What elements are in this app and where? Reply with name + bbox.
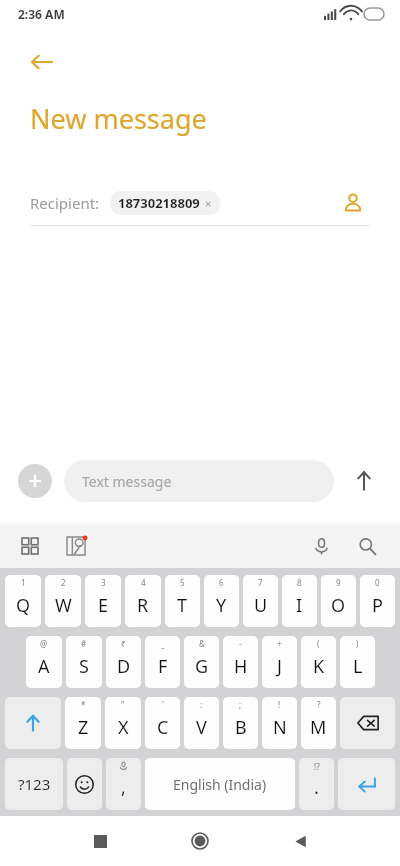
button[interactable]: ; [223, 697, 258, 749]
staticText: 6 [219, 577, 224, 588]
button[interactable]: _ [145, 636, 180, 688]
staticText: : [200, 699, 203, 710]
button[interactable]: !? [299, 758, 334, 810]
button[interactable]: & [184, 636, 219, 688]
staticText: E [98, 593, 109, 618]
staticText: _ [161, 638, 165, 649]
button[interactable]: Search [350, 529, 384, 563]
button[interactable]: * [65, 697, 101, 749]
staticText: 9 [336, 577, 341, 588]
staticText: Y [216, 593, 227, 618]
button[interactable]: Home [178, 819, 222, 863]
staticText: O [331, 593, 346, 618]
button[interactable]: 0 [360, 575, 395, 627]
staticText: L [353, 654, 363, 679]
staticText: B [235, 715, 247, 740]
button[interactable]: Choose contact [336, 186, 370, 220]
button[interactable]: Text message [64, 460, 334, 502]
button[interactable]: Back [278, 819, 322, 863]
staticText: ?123 [18, 774, 51, 794]
staticText: W [55, 593, 72, 618]
staticText: " [121, 699, 125, 710]
staticText: . [314, 775, 319, 800]
staticText: K [313, 654, 325, 679]
staticText: ! [278, 699, 281, 710]
staticText: V [196, 715, 207, 740]
staticText: 8 [297, 577, 302, 588]
staticText: F [158, 654, 168, 679]
button[interactable]: # [66, 636, 102, 688]
button[interactable]: 8 [282, 575, 317, 627]
button[interactable]: Recents [78, 819, 122, 863]
staticText: H [234, 654, 248, 679]
staticText: Text message [82, 472, 172, 491]
staticText: 7 [258, 577, 263, 588]
button[interactable]: 18730218809 [110, 191, 220, 215]
staticText: ' [162, 699, 164, 710]
button[interactable]: ' [145, 697, 180, 749]
button[interactable]: ₹ [106, 636, 141, 688]
staticText: - [239, 638, 242, 649]
staticText: !? [314, 761, 320, 772]
staticText: English (India) [173, 775, 267, 794]
staticText: & [199, 638, 205, 649]
staticText: × [205, 196, 212, 211]
staticText: D [117, 654, 131, 679]
button[interactable]: Send [346, 463, 382, 499]
button[interactable]: Backspace [340, 697, 395, 749]
button[interactable]: 2 [45, 575, 81, 627]
staticText: Recipient: [30, 193, 100, 213]
staticText: Z [78, 715, 89, 740]
staticText: ) [356, 638, 359, 649]
button[interactable]: Add attachment [18, 464, 52, 498]
staticText: , [121, 775, 126, 800]
button[interactable]: 4 [125, 575, 161, 627]
staticText: 5 [180, 577, 185, 588]
button[interactable]: Shift [5, 697, 61, 749]
button[interactable]: - [223, 636, 258, 688]
staticText: # [81, 638, 87, 649]
staticText: T [177, 593, 188, 618]
button[interactable]: Enter [338, 758, 395, 810]
staticText: S [79, 654, 89, 679]
button[interactable]: 7 [243, 575, 278, 627]
button[interactable]: ( [301, 636, 336, 688]
button[interactable]: 5 [165, 575, 200, 627]
staticText: @ [40, 638, 48, 649]
button[interactable]: " [105, 697, 141, 749]
staticText: A [38, 654, 50, 679]
staticText: 18730218809 [118, 194, 200, 212]
staticText: 0 [375, 577, 380, 588]
staticText: U [254, 593, 268, 618]
button[interactable]: Voice input [304, 529, 338, 563]
staticText: 2:36 AM [18, 6, 65, 22]
staticText: ? [317, 699, 321, 710]
staticText: J [277, 654, 282, 679]
staticText: M [310, 715, 327, 740]
button[interactable]: Theme [60, 530, 92, 562]
button[interactable]: Keyboard options [14, 530, 46, 562]
staticText: New message [30, 100, 207, 137]
staticText: ; [239, 699, 242, 710]
button[interactable]: 1 [5, 575, 41, 627]
button[interactable]: 3 [85, 575, 121, 627]
staticText: X [118, 715, 129, 740]
staticText: + [277, 638, 282, 649]
button[interactable]: 9 [321, 575, 356, 627]
button[interactable]: Emoji [67, 758, 102, 810]
button[interactable]: @ [26, 636, 62, 688]
button[interactable]: 6 [204, 575, 239, 627]
button[interactable]: ! [262, 697, 297, 749]
button[interactable]: + [262, 636, 297, 688]
staticText: R [137, 593, 149, 618]
button[interactable]: , [106, 758, 141, 810]
staticText: 2 [61, 577, 66, 588]
button[interactable]: ) [340, 636, 375, 688]
button[interactable]: English (India) [145, 758, 295, 810]
button[interactable]: : [184, 697, 219, 749]
staticText: * [81, 699, 86, 710]
button[interactable]: ? [301, 697, 336, 749]
staticText: P [372, 593, 383, 618]
button[interactable]: Back [18, 38, 66, 86]
button[interactable]: ?123 [5, 758, 63, 810]
